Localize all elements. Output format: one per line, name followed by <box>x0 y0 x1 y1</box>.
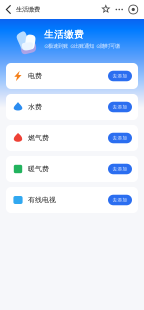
staticText: 去添加 <box>112 104 127 110</box>
staticText: 水费 <box>28 103 42 111</box>
button[interactable]: 燃气费 <box>6 125 138 151</box>
button[interactable]: Favorite <box>102 5 110 14</box>
staticText: 有线电视 <box>28 196 56 204</box>
staticText: 去添加 <box>112 73 127 79</box>
staticText: ⊙极速到账 ⊙出账通知 ⊙随时可缴 <box>44 43 120 49</box>
staticText: 燃气费 <box>28 134 49 142</box>
button[interactable]: 暖气费 <box>6 156 138 182</box>
staticText: 暖气费 <box>28 165 49 173</box>
button[interactable]: 水费 <box>6 94 138 120</box>
staticText: 生活缴费 <box>44 28 84 41</box>
staticText: 电费 <box>28 72 42 80</box>
staticText: 去添加 <box>112 135 127 141</box>
button[interactable]: 电费 <box>6 63 138 89</box>
staticText: 去添加 <box>112 197 127 203</box>
button[interactable]: Back <box>5 4 16 14</box>
staticText: 生活缴费 <box>16 6 40 13</box>
button[interactable]: 有线电视 <box>6 187 138 213</box>
button[interactable]: Close <box>128 5 138 14</box>
staticText: 去添加 <box>112 166 127 172</box>
button[interactable]: More <box>110 5 128 14</box>
